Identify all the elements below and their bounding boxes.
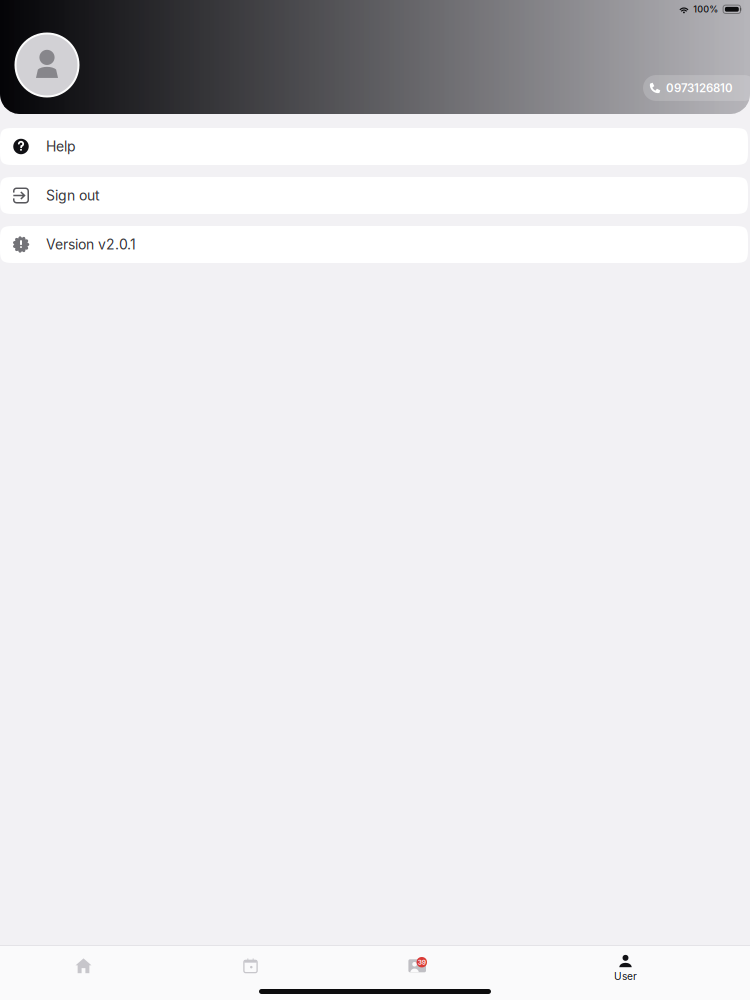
staticText: Help [46,138,76,155]
button[interactable]: Home [0,946,167,982]
button[interactable]: Sign out [0,177,748,214]
staticText: 100% [693,4,718,15]
button[interactable]: Help [0,128,748,165]
button[interactable]: 0973126810 [643,75,750,101]
staticText: 0973126810 [666,81,733,95]
staticText: 39 [418,958,426,966]
button[interactable]: Cards [334,946,501,982]
button[interactable]: Profile photo [14,32,79,97]
staticText: Version v2.0.1 [46,236,136,253]
button[interactable]: Version v2.0.1 [0,226,748,263]
button[interactable]: Calendar [167,946,334,982]
staticText: Sign out [46,187,100,204]
button[interactable]: User [501,946,750,982]
staticText: User [614,970,637,982]
